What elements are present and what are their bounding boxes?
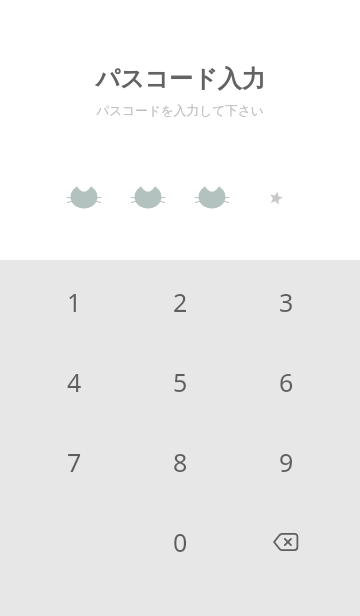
staticText: パスコード入力 — [95, 64, 266, 94]
staticText: パスコードを入力して下さい — [96, 103, 264, 119]
staticText: 2 — [173, 285, 188, 319]
staticText: 5 — [173, 365, 188, 399]
button[interactable]: 6 — [233, 342, 339, 422]
button[interactable]: 4 — [21, 342, 127, 422]
staticText: 6 — [279, 365, 294, 399]
button[interactable]: 7 — [21, 422, 127, 502]
button[interactable]: 1 — [21, 262, 127, 342]
button[interactable]: 5 — [127, 342, 233, 422]
staticText: 8 — [173, 445, 188, 479]
button[interactable]: Delete — [233, 502, 339, 582]
button[interactable]: 3 — [233, 262, 339, 342]
other: Delete — [271, 530, 301, 554]
staticText: 0 — [173, 525, 188, 559]
staticText: 7 — [67, 445, 82, 479]
button[interactable]: 8 — [127, 422, 233, 502]
button[interactable]: 0 — [127, 502, 233, 582]
staticText: 3 — [279, 285, 294, 319]
staticText: 9 — [279, 445, 294, 479]
staticText: 1 — [67, 285, 82, 319]
button[interactable]: 2 — [127, 262, 233, 342]
button[interactable]: 9 — [233, 422, 339, 502]
staticText: 4 — [67, 365, 82, 399]
